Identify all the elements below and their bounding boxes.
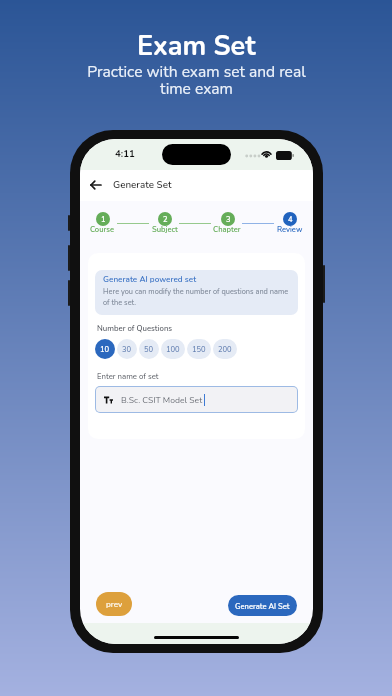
- staticText: Exam Set: [137, 28, 256, 65]
- button[interactable]: prev: [96, 592, 132, 616]
- staticText: Chapter: [213, 224, 241, 234]
- staticText: 1: [101, 214, 106, 224]
- button[interactable]: 3: [221, 212, 235, 226]
- button[interactable]: Back: [84, 174, 106, 196]
- staticText: 3: [226, 214, 231, 224]
- button[interactable]: Generate AI Set: [228, 595, 297, 616]
- staticText: Generate AI Set: [235, 601, 290, 611]
- staticText: 30: [122, 344, 132, 354]
- staticText: Practice with exam set and real time exa…: [87, 61, 306, 100]
- staticText: Generate AI powered set: [103, 274, 197, 285]
- button[interactable]: 100: [161, 339, 185, 359]
- button[interactable]: 150: [187, 339, 211, 359]
- button[interactable]: 10: [95, 339, 115, 359]
- staticText: 2: [163, 214, 168, 224]
- staticText: Number of Questions: [97, 323, 173, 334]
- button[interactable]: 50: [139, 339, 159, 359]
- staticText: Course: [90, 224, 115, 234]
- staticText: Review: [277, 224, 303, 234]
- staticText: 100: [166, 344, 180, 354]
- button[interactable]: B.Sc. CSIT Model Set: [96, 387, 297, 412]
- staticText: prev: [106, 599, 123, 610]
- staticText: 10: [100, 344, 110, 354]
- staticText: 4:11: [115, 147, 135, 160]
- staticText: 50: [144, 344, 154, 354]
- button[interactable]: 4: [283, 212, 297, 226]
- button[interactable]: 200: [213, 339, 237, 359]
- button[interactable]: 2: [158, 212, 172, 226]
- staticText: 200: [218, 344, 232, 354]
- staticText: 4: [288, 214, 293, 224]
- staticText: B.Sc. CSIT Model Set: [121, 394, 203, 406]
- staticText: Generate Set: [113, 178, 172, 191]
- staticText: Here you can modify the number of questi…: [103, 287, 290, 307]
- button[interactable]: 1: [96, 212, 110, 226]
- staticText: Enter name of set: [97, 371, 159, 382]
- button[interactable]: 30: [117, 339, 137, 359]
- staticText: Subject: [152, 224, 178, 234]
- staticText: 150: [192, 344, 206, 354]
